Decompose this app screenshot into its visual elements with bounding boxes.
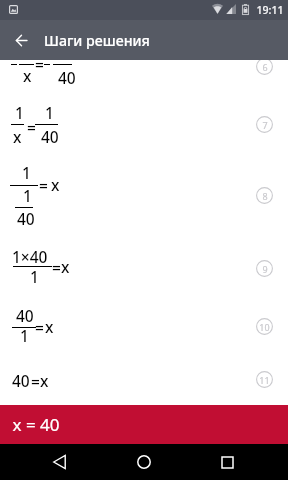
staticText: = bbox=[52, 257, 61, 278]
staticText: 40 bbox=[41, 126, 59, 147]
staticText: 19:11 bbox=[256, 3, 284, 17]
staticText: 1×40 bbox=[12, 246, 48, 267]
staticText: x bbox=[23, 65, 32, 86]
staticText: 11 bbox=[259, 374, 270, 386]
button[interactable]: = bbox=[0, 60, 288, 95]
button[interactable]: 1×40 bbox=[0, 232, 288, 296]
button[interactable]: Back bbox=[36, 444, 84, 480]
staticText: 9 bbox=[262, 263, 268, 275]
staticText: = bbox=[31, 371, 40, 392]
staticText: 1 bbox=[22, 162, 31, 183]
button[interactable]: 1 bbox=[0, 95, 288, 160]
staticText: 40 bbox=[16, 305, 34, 326]
staticText: = bbox=[39, 175, 48, 196]
staticText: x bbox=[13, 126, 22, 147]
button[interactable]: Back bbox=[0, 20, 40, 60]
button[interactable]: 40 bbox=[0, 356, 288, 405]
staticText: 1 bbox=[23, 185, 32, 206]
staticText: Шаги решения bbox=[44, 31, 150, 50]
staticText: 40 bbox=[58, 67, 76, 88]
staticText: x bbox=[61, 256, 70, 277]
staticText: 7 bbox=[262, 119, 268, 131]
staticText: x bbox=[45, 316, 54, 337]
button[interactable]: Recent apps bbox=[203, 444, 251, 480]
staticText: = bbox=[27, 117, 36, 138]
staticText: 10 bbox=[259, 321, 270, 333]
staticText: = bbox=[35, 60, 44, 75]
button[interactable]: 40 bbox=[0, 296, 288, 356]
button[interactable]: 1 bbox=[0, 160, 288, 232]
staticText: 40 bbox=[17, 208, 35, 229]
staticText: 8 bbox=[262, 190, 268, 202]
staticText: 1 bbox=[20, 325, 29, 346]
staticText: x = 40 bbox=[12, 413, 60, 436]
staticText: 1 bbox=[45, 102, 54, 123]
staticText: 1 bbox=[30, 266, 39, 287]
button[interactable]: x = 40 bbox=[0, 405, 288, 444]
staticText: x bbox=[40, 370, 49, 391]
staticText: 40 bbox=[12, 370, 30, 391]
button[interactable]: Home bbox=[120, 444, 168, 480]
staticText: 1 bbox=[15, 102, 24, 123]
staticText: 6 bbox=[262, 61, 268, 73]
staticText: x bbox=[51, 174, 60, 195]
staticText: = bbox=[35, 317, 44, 338]
